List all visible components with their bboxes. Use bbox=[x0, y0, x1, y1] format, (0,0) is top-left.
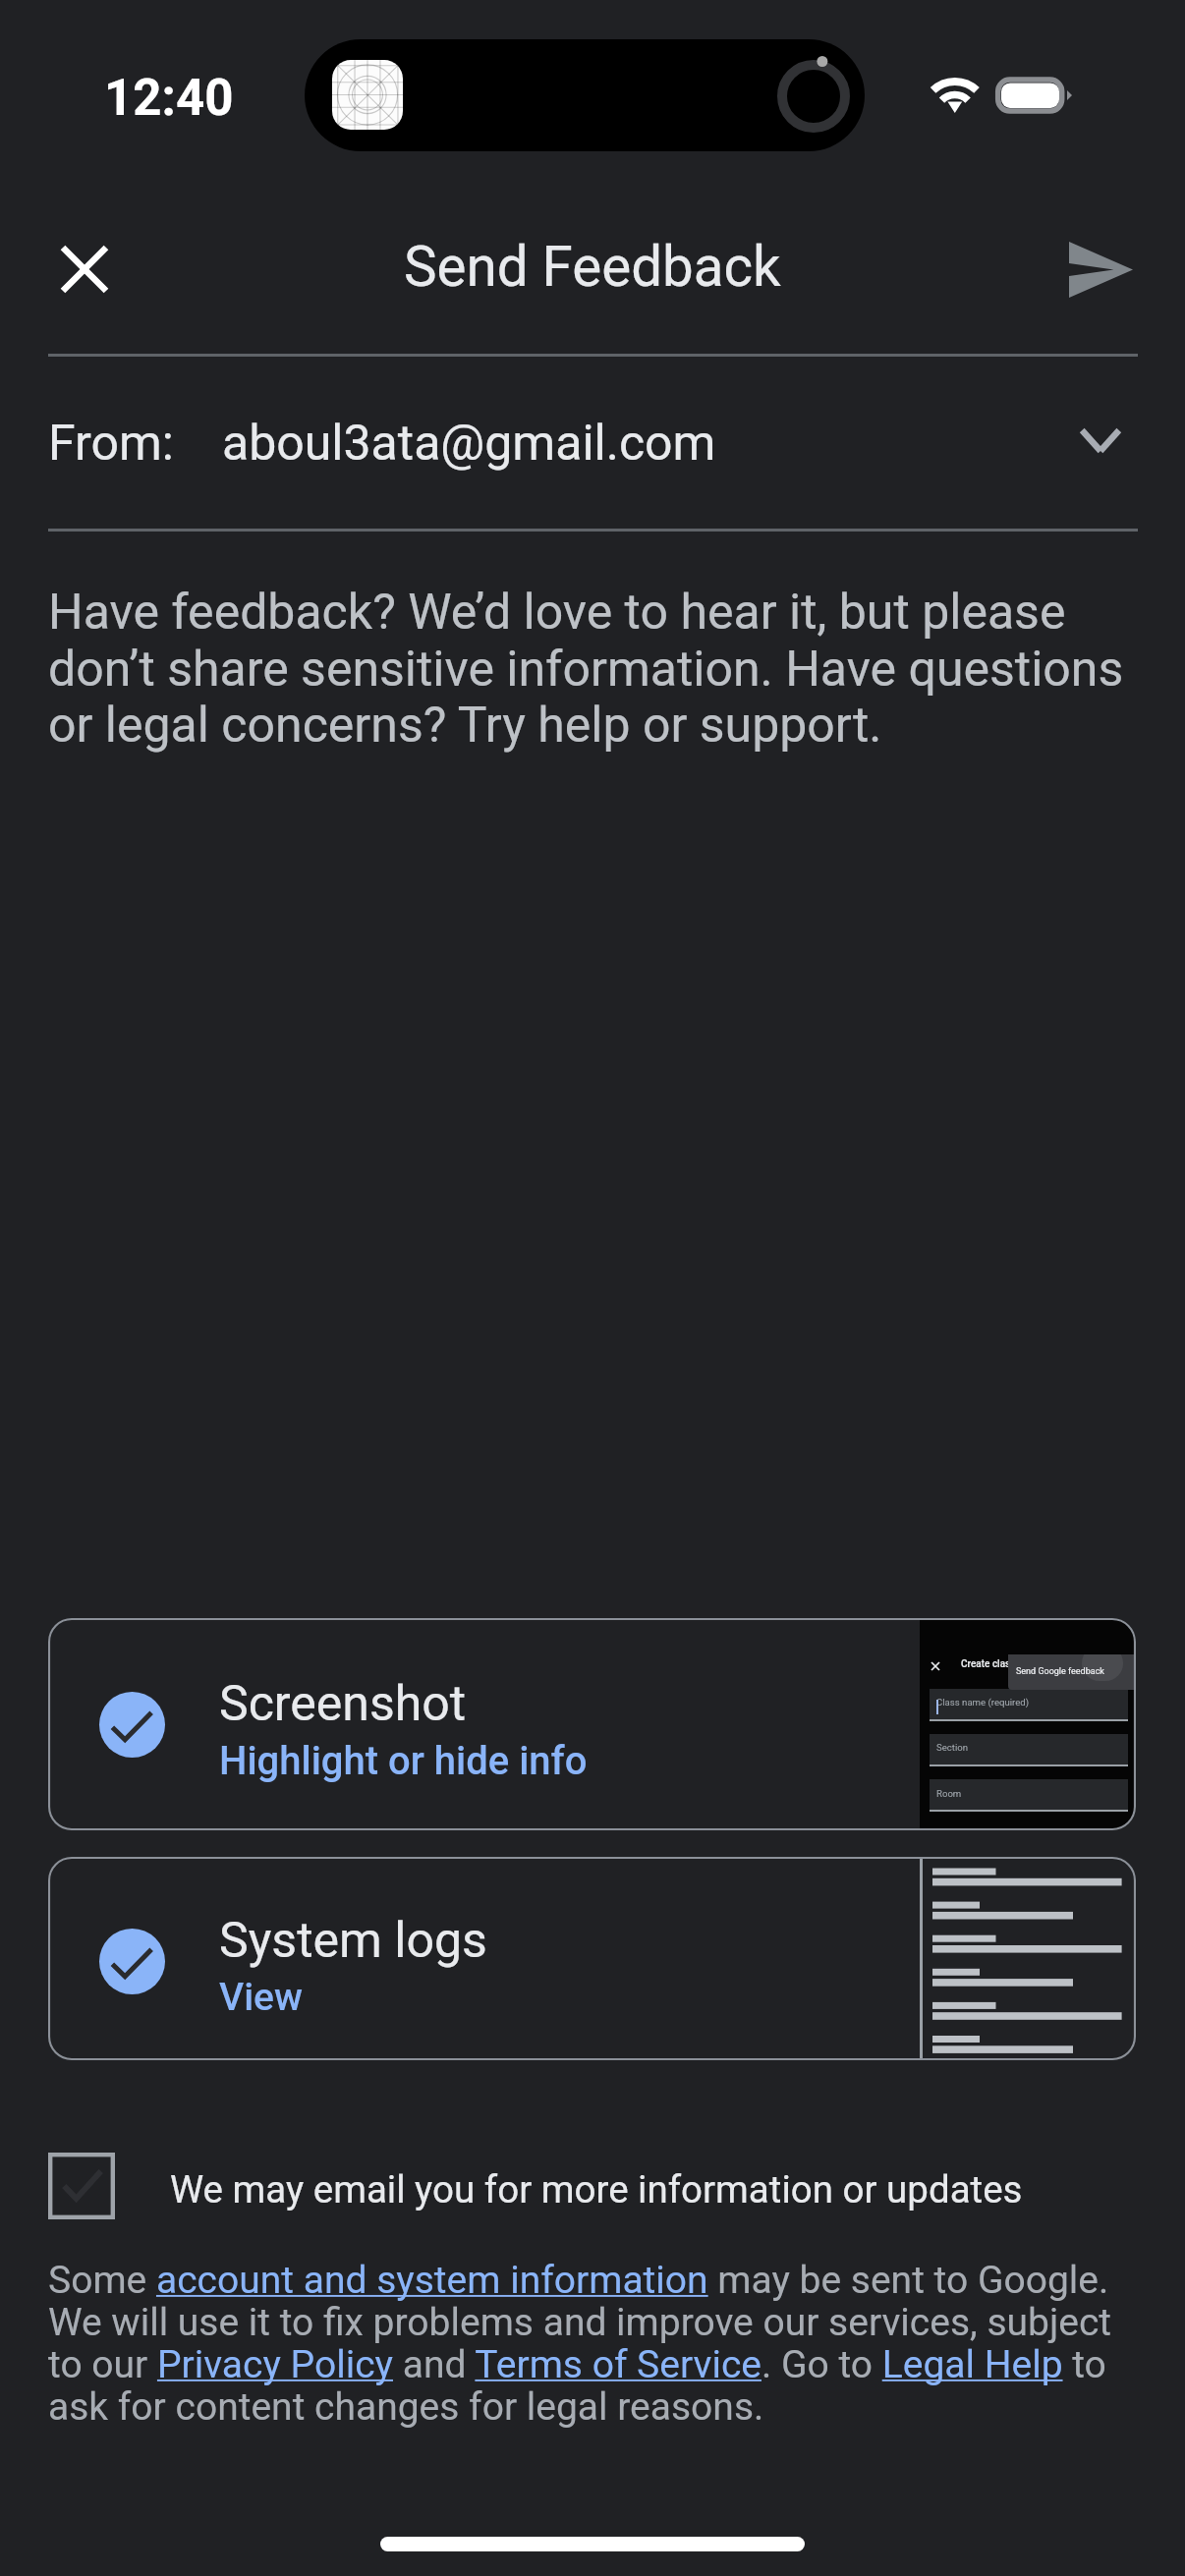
staticText: Class name (required) bbox=[936, 1697, 1030, 1708]
staticText: Send Google feedback bbox=[1016, 1666, 1104, 1677]
staticText: Section bbox=[936, 1742, 969, 1753]
button[interactable]: System logs bbox=[48, 1857, 1136, 2060]
staticText: Create clas bbox=[961, 1658, 1011, 1670]
staticText: We may email you for more information or… bbox=[170, 2167, 1023, 2212]
staticText: aboul3ata@gmail.com bbox=[222, 415, 716, 473]
button[interactable]: We may email you for more information or… bbox=[39, 2137, 1140, 2235]
staticText: View bbox=[219, 1975, 303, 2020]
staticText: Room bbox=[936, 1788, 962, 1799]
staticText: Send Feedback bbox=[404, 235, 781, 300]
staticText: Some account and system information may … bbox=[48, 2258, 1141, 2430]
button[interactable]: Close bbox=[33, 218, 136, 320]
staticText: Highlight or hide info bbox=[219, 1738, 588, 1784]
staticText: Screenshot bbox=[219, 1675, 467, 1733]
button[interactable]: Create clas bbox=[48, 1618, 1136, 1830]
staticText: System logs bbox=[219, 1912, 487, 1970]
staticText: Have feedback? We’d love to hear it, but… bbox=[48, 584, 1139, 754]
staticText: From: bbox=[48, 415, 174, 473]
button[interactable]: From: bbox=[0, 357, 1185, 530]
staticText: 12:40 bbox=[104, 69, 234, 128]
button[interactable]: Send bbox=[1049, 218, 1152, 320]
